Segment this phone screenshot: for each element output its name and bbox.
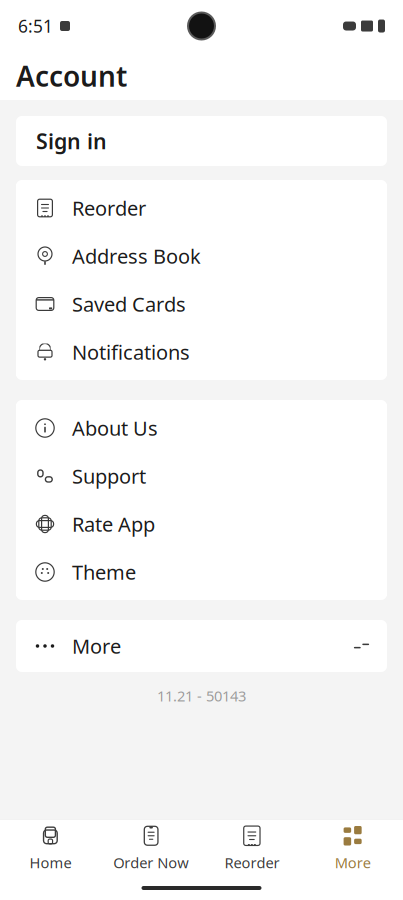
staticText: More xyxy=(72,633,121,659)
button[interactable]: Sign in xyxy=(16,116,387,166)
button[interactable]: Home xyxy=(0,820,101,876)
button[interactable]: Saved Cards xyxy=(16,280,387,328)
staticText: Sign in xyxy=(36,127,107,155)
button[interactable]: Notifications xyxy=(16,328,387,376)
button[interactable]: Theme xyxy=(16,548,387,596)
staticText: Order Now xyxy=(113,853,189,872)
staticText: Address Book xyxy=(72,243,201,269)
button[interactable]: Order Now xyxy=(101,820,202,876)
button[interactable]: Address Book xyxy=(16,232,387,280)
button[interactable]: More xyxy=(16,620,387,672)
staticText: Account xyxy=(16,57,127,95)
button[interactable]: Rate App xyxy=(16,500,387,548)
staticText: 6:51 xyxy=(18,14,53,37)
staticText: Theme xyxy=(72,559,136,585)
button[interactable]: More xyxy=(302,820,403,876)
button[interactable]: Reorder xyxy=(16,184,387,232)
staticText: About Us xyxy=(72,415,158,441)
button[interactable]: About Us xyxy=(16,404,387,452)
staticText: Home xyxy=(29,853,71,872)
staticText: Notifications xyxy=(72,339,190,365)
staticText: Rate App xyxy=(72,511,155,537)
button[interactable]: Reorder xyxy=(201,820,302,876)
staticText: Reorder xyxy=(72,195,146,221)
staticText: Saved Cards xyxy=(72,291,186,317)
staticText: 11.21 - 50143 xyxy=(157,686,246,705)
staticText: More xyxy=(335,853,371,872)
staticText: Support xyxy=(72,463,146,489)
staticText: Reorder xyxy=(224,853,279,872)
button[interactable]: Support xyxy=(16,452,387,500)
